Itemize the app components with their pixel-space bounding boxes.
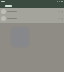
button[interactable] — [0, 8, 64, 15]
button[interactable] — [0, 15, 64, 22]
